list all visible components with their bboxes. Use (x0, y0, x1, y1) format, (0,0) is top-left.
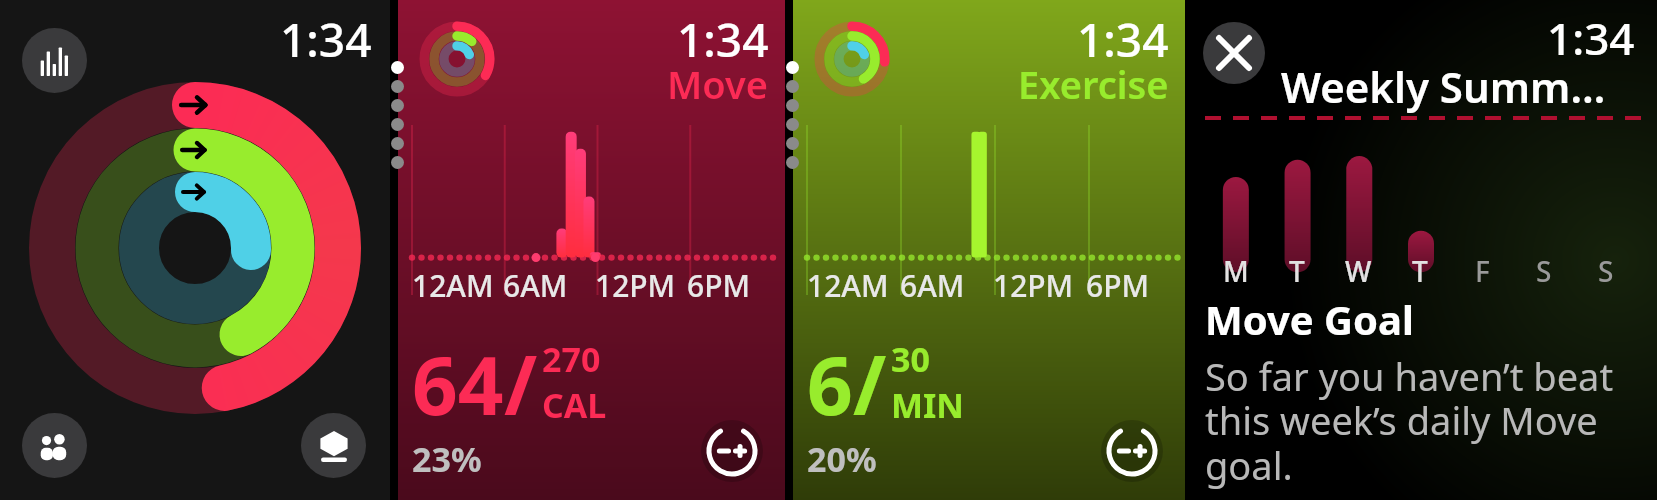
staticText: 12AM (807, 265, 889, 306)
staticText: 12PM (993, 265, 1074, 306)
staticText: 12AM (412, 265, 494, 306)
staticText: Move (667, 58, 769, 110)
staticText: T (1289, 252, 1305, 290)
button[interactable]: Sharing (22, 413, 87, 478)
staticText: 1:34 (1547, 8, 1635, 68)
staticText: / (504, 329, 538, 438)
staticText: Exercise (1018, 58, 1169, 110)
button[interactable]: Activity history (22, 28, 87, 93)
button[interactable]: Awards (301, 413, 366, 478)
staticText: So far you haven’t beat this week’s dail… (1205, 350, 1657, 491)
staticText: S (1598, 252, 1614, 290)
staticText: 64 (412, 329, 504, 438)
staticText: 12PM (595, 265, 676, 306)
staticText: 1:34 (1077, 8, 1169, 71)
staticText: / (853, 329, 887, 438)
staticText: 6PM (1086, 265, 1149, 306)
button[interactable]: Change goal (701, 420, 763, 482)
staticText: W (1345, 252, 1372, 290)
staticText: F (1475, 252, 1490, 290)
button[interactable]: Close (1203, 22, 1265, 84)
button[interactable]: Change goal (1101, 420, 1163, 482)
staticText: Weekly Summ… (1281, 58, 1606, 115)
staticText: 30 (891, 336, 930, 382)
staticText: S (1536, 252, 1552, 290)
staticText: Move Goal (1205, 292, 1414, 346)
staticText: CAL (542, 382, 607, 428)
staticText: 1:34 (677, 8, 769, 71)
staticText: 23% (412, 436, 482, 482)
staticText: 6AM (900, 265, 965, 306)
staticText: 270 (542, 336, 601, 382)
staticText: 20% (807, 436, 877, 482)
staticText: 6 (807, 329, 853, 438)
staticText: M (1223, 252, 1249, 290)
staticText: 6AM (503, 265, 568, 306)
staticText: 6PM (687, 265, 750, 306)
staticText: T (1412, 252, 1428, 290)
staticText: MIN (891, 382, 964, 428)
staticText: 1:34 (280, 8, 372, 71)
